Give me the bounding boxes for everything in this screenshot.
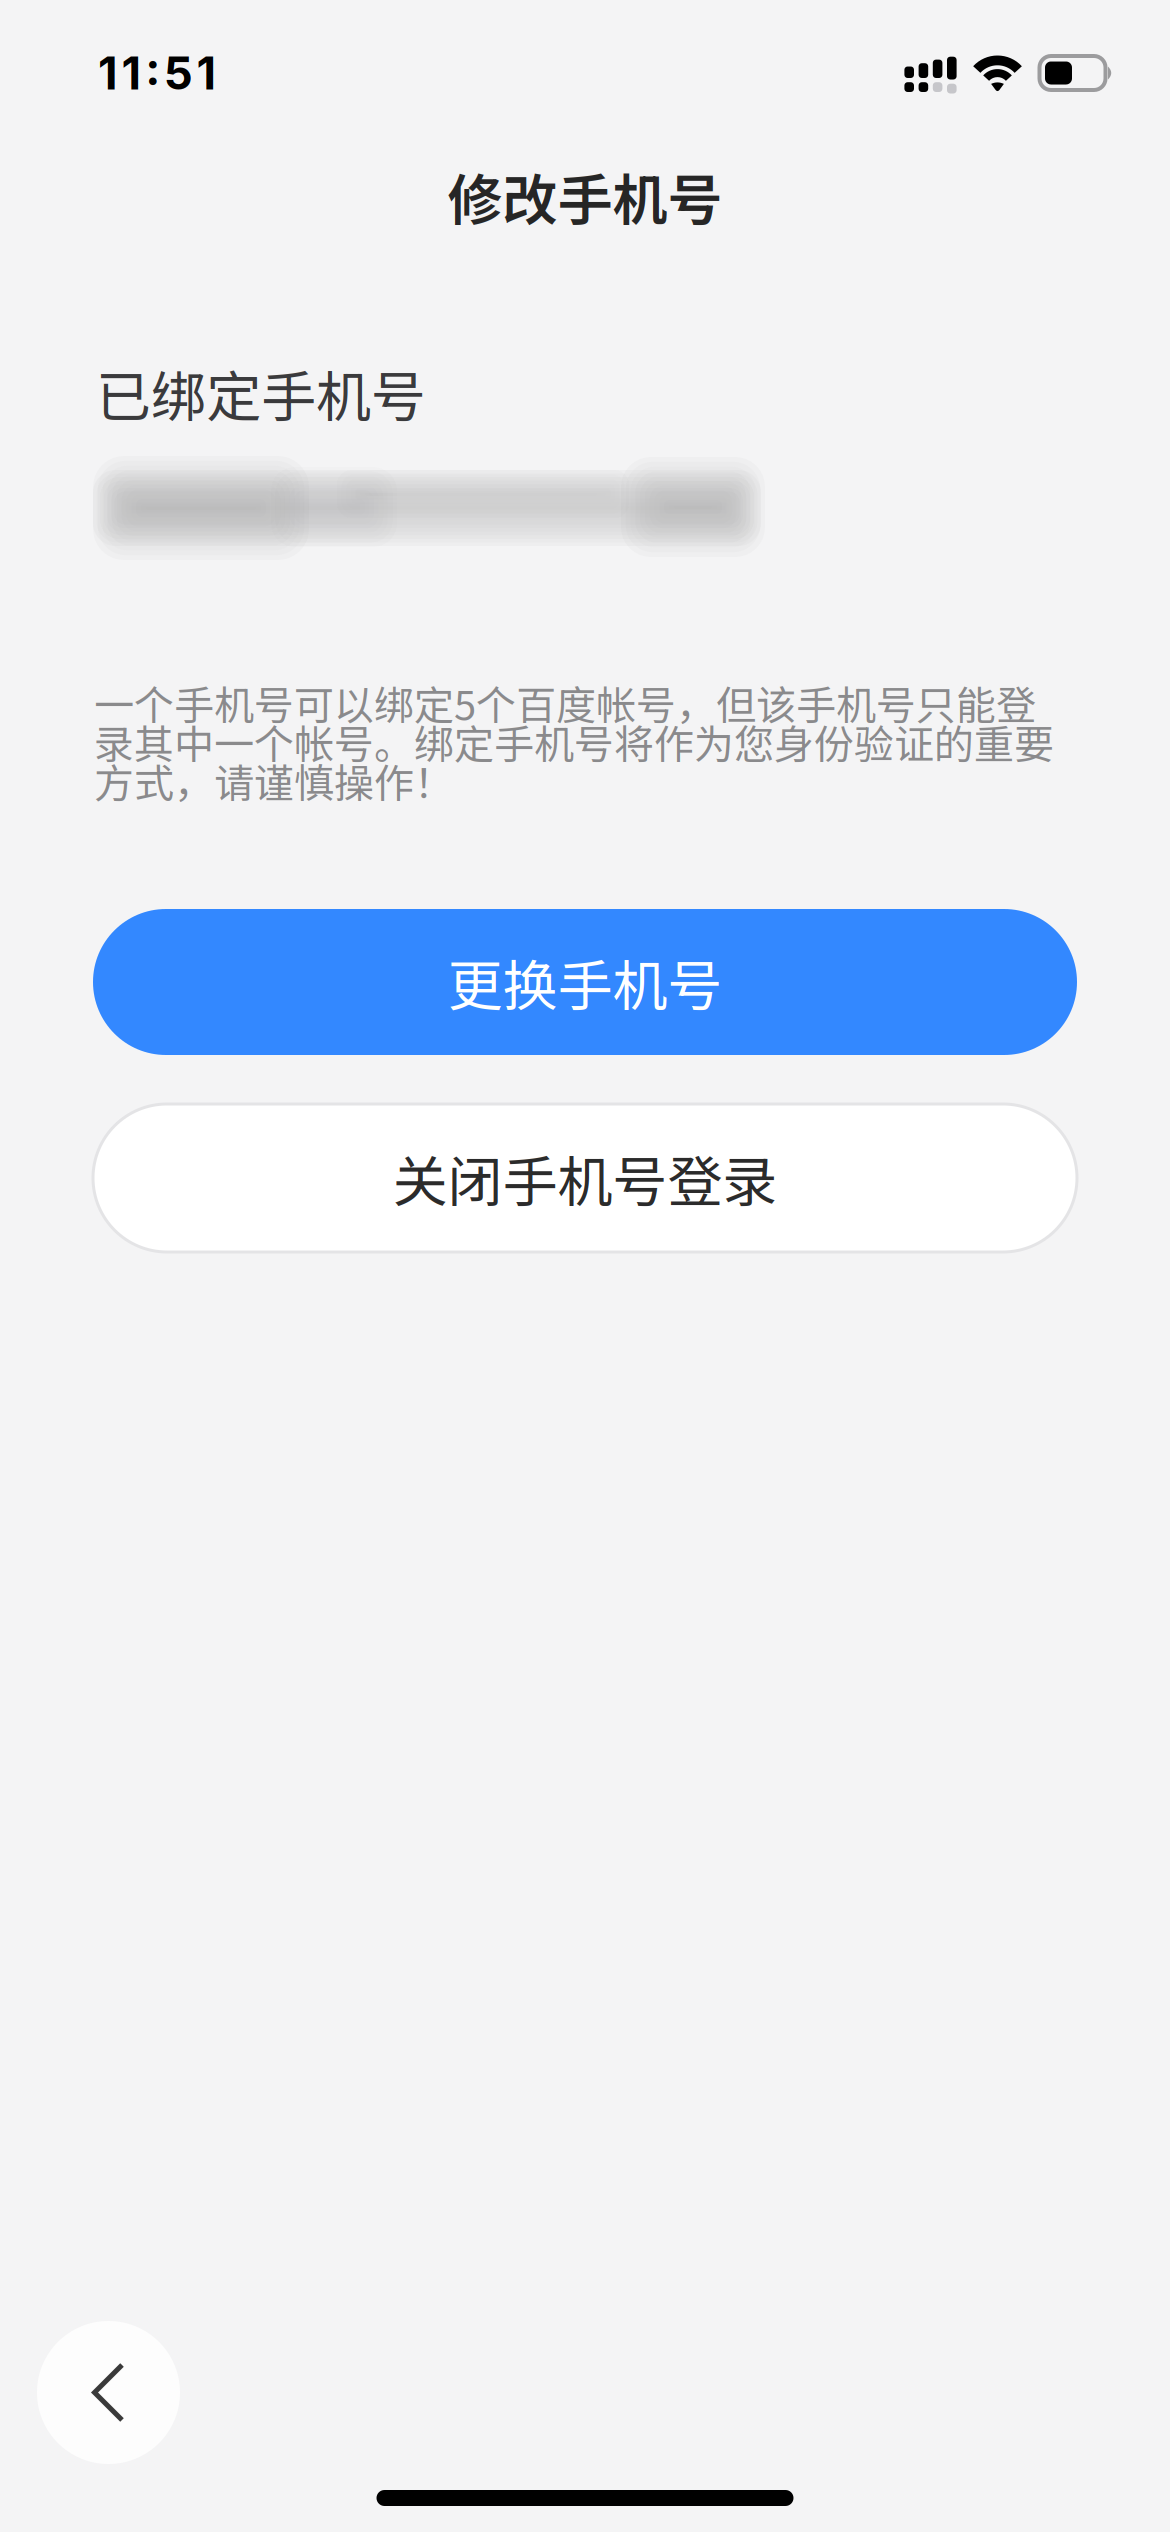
staticText: 修改手机号	[447, 156, 722, 236]
staticText: 更换手机号	[447, 942, 722, 1022]
staticText: 方式，请谨慎操作！	[94, 751, 454, 809]
staticText: 已绑定手机号	[96, 353, 426, 433]
staticText: 一个手机号可以绑定5个百度帐号，但该手机号只能登	[94, 673, 1036, 731]
staticText: 11:51	[98, 46, 216, 100]
button[interactable]: Back	[37, 2321, 180, 2464]
staticText: 录其中一个帐号。绑定手机号将作为您身份验证的重要	[94, 712, 1054, 770]
button[interactable]: 关闭手机号登录	[93, 1104, 1077, 1252]
button[interactable]: 更换手机号	[93, 909, 1077, 1055]
staticText: 关闭手机号登录	[392, 1138, 777, 1218]
